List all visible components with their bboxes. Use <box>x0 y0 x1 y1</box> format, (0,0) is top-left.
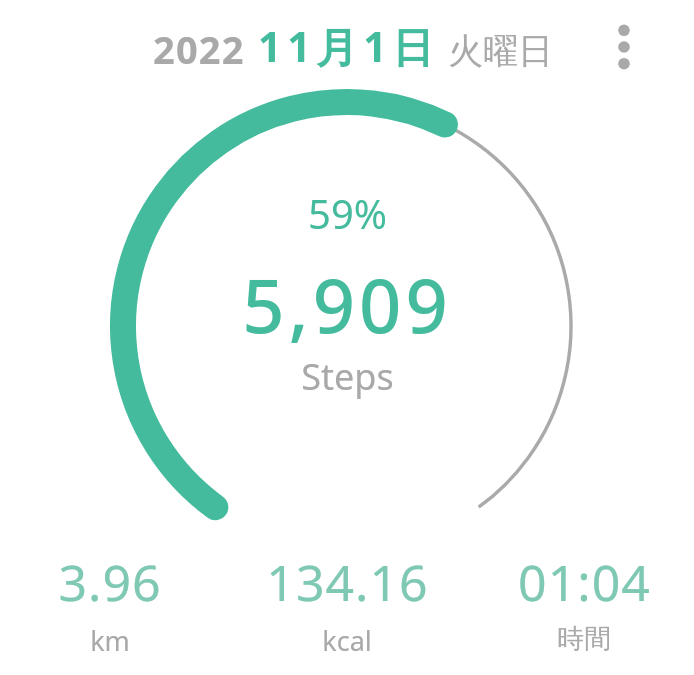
staticText: 59% <box>308 186 387 240</box>
staticText: 時間 <box>557 622 611 656</box>
staticText: Steps <box>301 352 394 401</box>
button[interactable]: 01:04 <box>494 548 674 656</box>
staticText: kcal <box>322 622 372 659</box>
staticText: 01:04 <box>518 548 651 616</box>
staticText: 134.16 <box>266 548 429 616</box>
staticText: 火曜日 <box>448 29 553 73</box>
button[interactable]: More options <box>600 23 648 71</box>
staticText: 3.96 <box>58 548 162 616</box>
button[interactable]: 134.16 <box>257 548 437 659</box>
button[interactable]: 3.96 <box>20 548 200 659</box>
staticText: 5,909 <box>242 254 452 355</box>
staticText: 11月1日 <box>258 18 440 74</box>
staticText: km <box>90 622 130 659</box>
staticText: 2022 <box>153 23 245 75</box>
